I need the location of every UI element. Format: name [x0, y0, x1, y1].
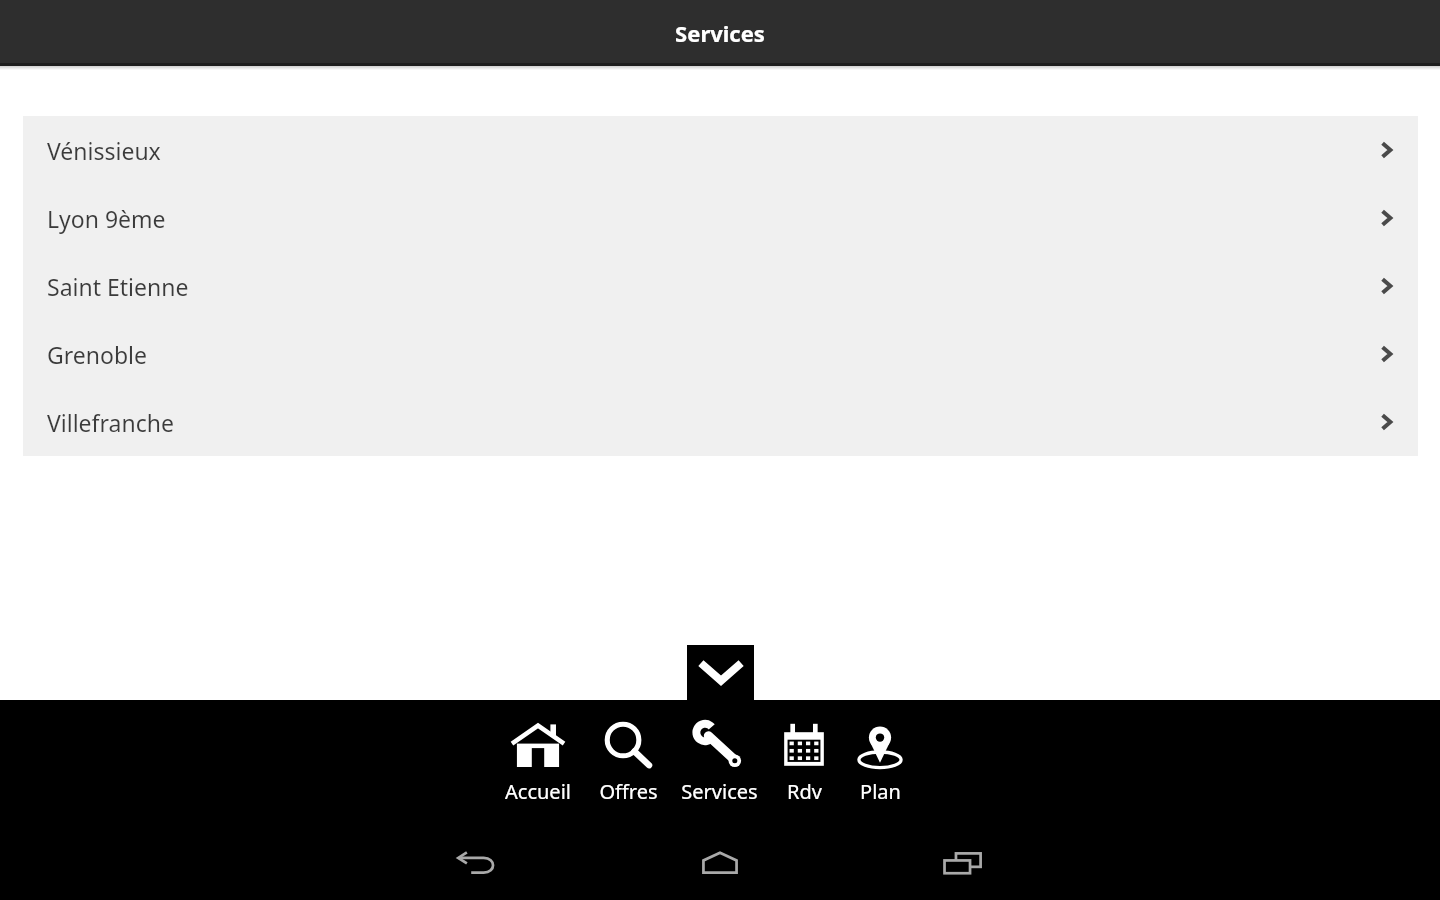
button[interactable]: Grenoble — [23, 320, 1418, 388]
button[interactable]: Home — [690, 843, 750, 883]
button[interactable]: Offres — [584, 716, 672, 805]
button[interactable]: Accueil — [492, 716, 584, 805]
staticText: Vénissieux — [47, 135, 1354, 166]
button[interactable]: Saint Etienne — [23, 252, 1418, 320]
button[interactable]: Collapse menu — [687, 645, 754, 700]
button[interactable]: Vénissieux — [23, 116, 1418, 184]
button[interactable]: Recent apps — [933, 843, 993, 883]
staticText: Services — [675, 18, 765, 48]
button[interactable]: Back — [446, 843, 506, 883]
staticText: Accueil — [505, 778, 571, 805]
button[interactable]: Services — [672, 716, 766, 805]
button[interactable]: Lyon 9ème — [23, 184, 1418, 252]
staticText: Saint Etienne — [47, 271, 1354, 302]
staticText: Lyon 9ème — [47, 203, 1354, 234]
staticText: Offres — [599, 778, 658, 805]
staticText: Plan — [860, 778, 901, 805]
button[interactable]: Villefranche — [23, 388, 1418, 456]
button[interactable]: Rdv — [766, 716, 842, 805]
staticText: Rdv — [787, 778, 822, 805]
button[interactable]: Plan — [842, 716, 918, 805]
staticText: Services — [681, 778, 758, 805]
staticText: Grenoble — [47, 339, 1354, 370]
staticText: Villefranche — [47, 407, 1354, 438]
